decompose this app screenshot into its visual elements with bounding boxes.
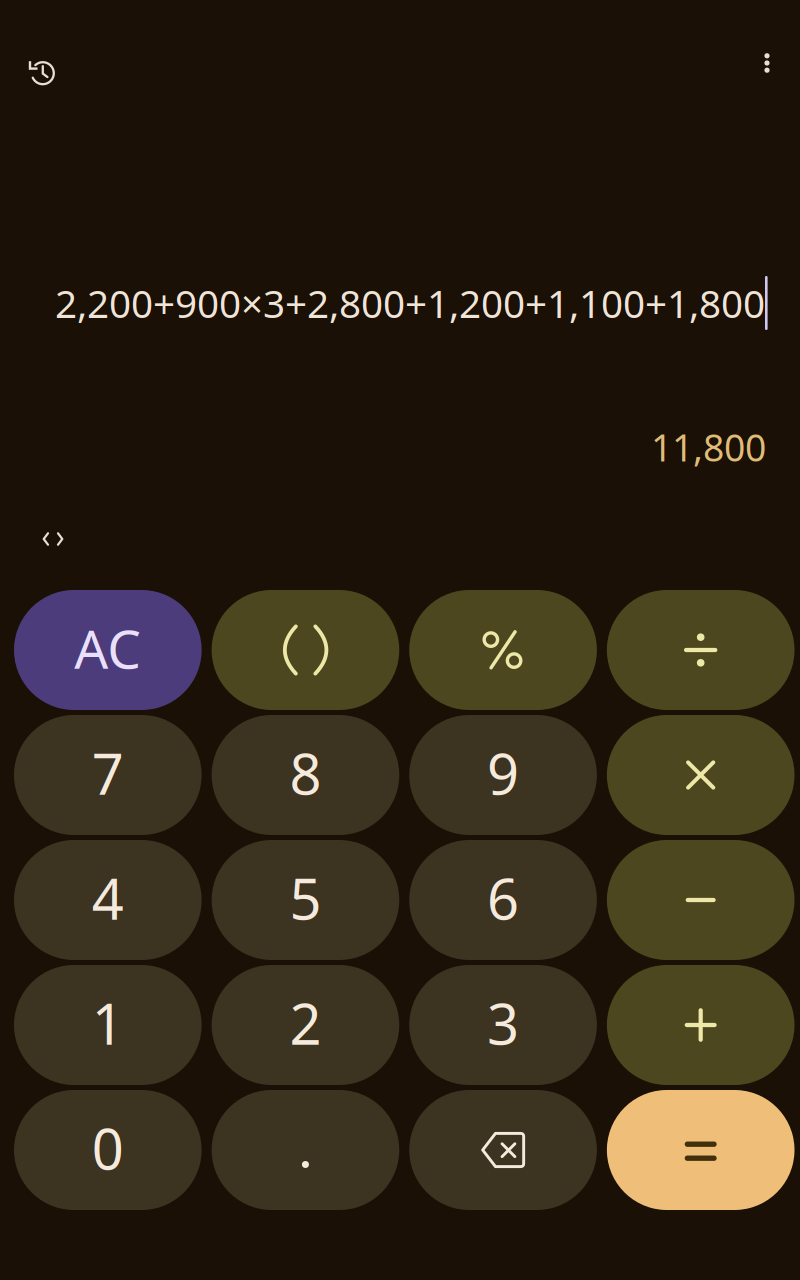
button[interactable]: AC bbox=[14, 590, 202, 710]
button[interactable]: 4 bbox=[14, 840, 202, 960]
button[interactable]: Percent bbox=[409, 590, 597, 710]
staticText: 4 bbox=[92, 861, 124, 935]
staticText: 0 bbox=[92, 1111, 124, 1185]
staticText: 2,200+900×3+2,800+1,200+1,100+1,800 bbox=[55, 277, 765, 329]
button[interactable]: Backspace bbox=[409, 1090, 597, 1210]
staticText: 9 bbox=[487, 736, 519, 810]
staticText: 11,800 bbox=[651, 422, 766, 472]
button[interactable]: 1 bbox=[14, 965, 202, 1085]
staticText: 1 bbox=[92, 986, 124, 1060]
button[interactable]: More options bbox=[743, 37, 795, 89]
button[interactable]: Parentheses bbox=[212, 590, 399, 710]
staticText: 7 bbox=[92, 736, 124, 810]
button[interactable]: Multiply bbox=[607, 715, 794, 835]
staticText: 3 bbox=[487, 986, 519, 1060]
button[interactable]: 8 bbox=[212, 715, 399, 835]
button[interactable]: Decimal point bbox=[212, 1090, 399, 1210]
staticText: 5 bbox=[289, 861, 321, 935]
staticText: 6 bbox=[487, 861, 519, 935]
button[interactable]: Equals bbox=[607, 1090, 794, 1210]
button[interactable]: 0 bbox=[14, 1090, 202, 1210]
button[interactable]: 3 bbox=[409, 965, 597, 1085]
button[interactable]: 2 bbox=[212, 965, 399, 1085]
staticText: 2 bbox=[289, 986, 321, 1060]
button[interactable]: 9 bbox=[409, 715, 597, 835]
staticText: 8 bbox=[289, 736, 321, 810]
button[interactable]: Subtract bbox=[607, 840, 794, 960]
staticText: AC bbox=[74, 613, 141, 683]
button[interactable]: Move cursor bbox=[36, 526, 70, 552]
button[interactable]: Add bbox=[607, 965, 794, 1085]
button[interactable]: Divide bbox=[607, 590, 794, 710]
button[interactable]: History bbox=[14, 37, 66, 89]
button[interactable]: 6 bbox=[409, 840, 597, 960]
button[interactable]: 5 bbox=[212, 840, 399, 960]
button[interactable]: 7 bbox=[14, 715, 202, 835]
